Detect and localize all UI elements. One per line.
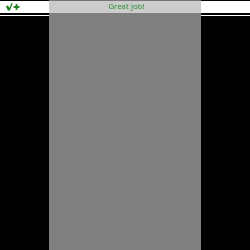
button[interactable]: Great job!	[49, 0, 201, 13]
button[interactable]: Mark complete and add	[0, 1, 49, 13]
staticText: Great job!	[108, 1, 145, 12]
